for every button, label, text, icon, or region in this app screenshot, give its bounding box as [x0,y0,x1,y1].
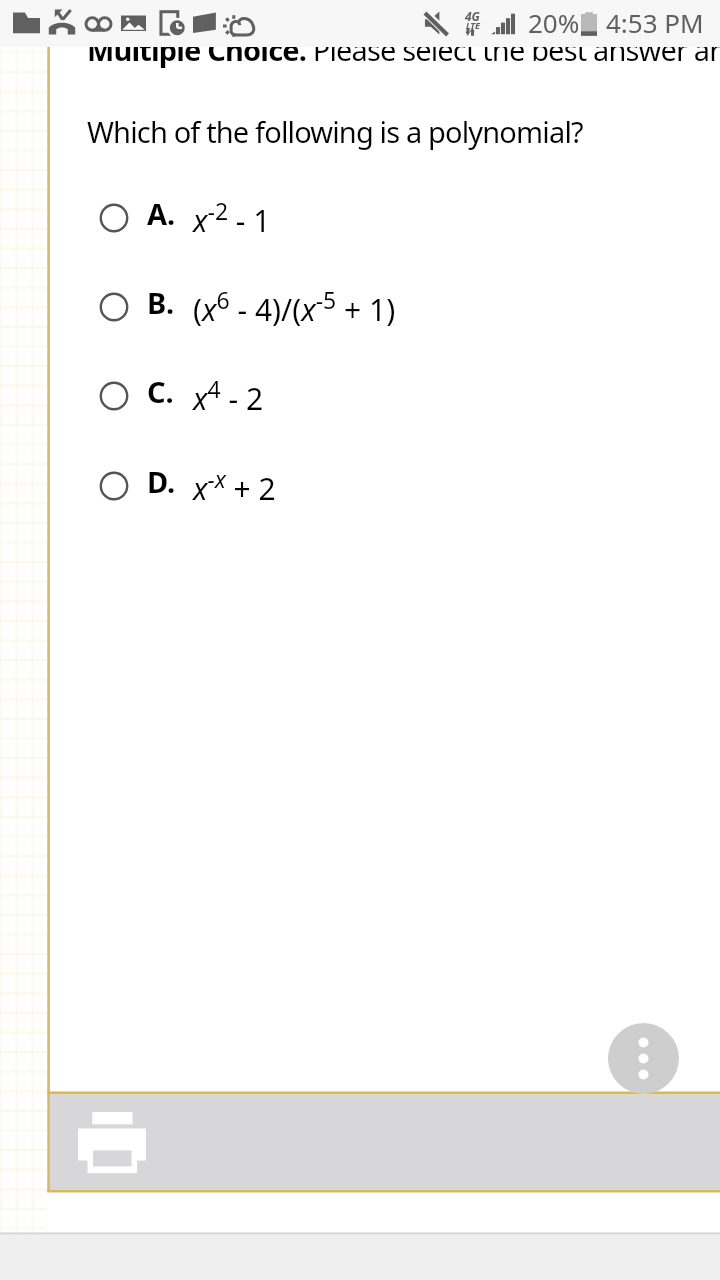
button[interactable]: Print [78,1112,146,1174]
button[interactable]: More options [608,1023,679,1094]
staticText: x4 - 2 [193,373,264,419]
button[interactable]: D. [96,454,656,518]
staticText: D. [147,462,176,501]
staticText: x-x + 2 [193,463,276,509]
staticText: Which of the following is a polynomial? [87,112,583,151]
staticText: A. [147,194,176,233]
staticText: 4G [465,8,480,24]
staticText: 20% [528,5,580,40]
button[interactable]: B. [96,275,656,339]
button[interactable]: A. [96,186,656,250]
staticText: 4:53 PM [606,5,704,40]
staticText: Multiple Choice. Please select the best … [87,30,720,69]
staticText: C. [147,372,174,411]
staticText: B. [147,283,175,322]
staticText: LTE [466,19,480,31]
button[interactable]: C. [96,364,656,428]
staticText: x-2 - 1 [193,195,271,241]
staticText: (x6 - 4)/(x-5 + 1) [193,284,396,330]
